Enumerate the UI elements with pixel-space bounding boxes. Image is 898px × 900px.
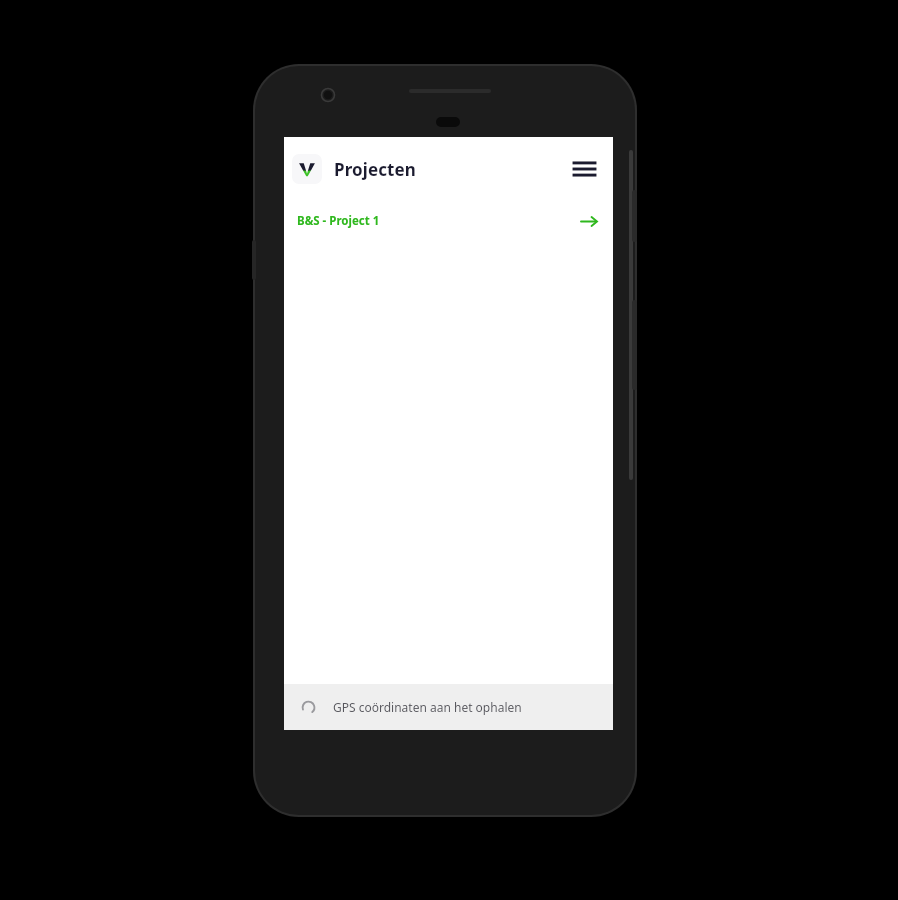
button[interactable]: GPS coördinaten aan het ophalen [284, 684, 613, 730]
staticText: Projecten [334, 158, 416, 181]
staticText: GPS coördinaten aan het ophalen [333, 699, 522, 715]
staticText: B&S - Project 1 [297, 213, 380, 229]
button[interactable]: Menu [569, 154, 599, 184]
button[interactable]: B&S - Project 1 [284, 201, 613, 241]
button[interactable]: App logo [292, 154, 322, 184]
